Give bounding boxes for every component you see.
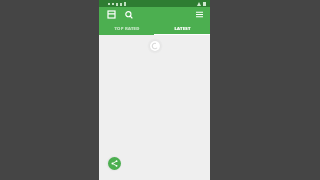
button[interactable]: LATEST xyxy=(154,22,210,35)
staticText: LATEST xyxy=(174,26,191,32)
button[interactable]: Share xyxy=(108,157,121,170)
button[interactable]: Grid view xyxy=(105,8,118,21)
staticText: TOP RATED xyxy=(114,26,140,32)
button[interactable]: Menu xyxy=(193,8,206,21)
button[interactable]: TOP RATED xyxy=(99,22,154,35)
button[interactable]: Search xyxy=(122,8,135,21)
